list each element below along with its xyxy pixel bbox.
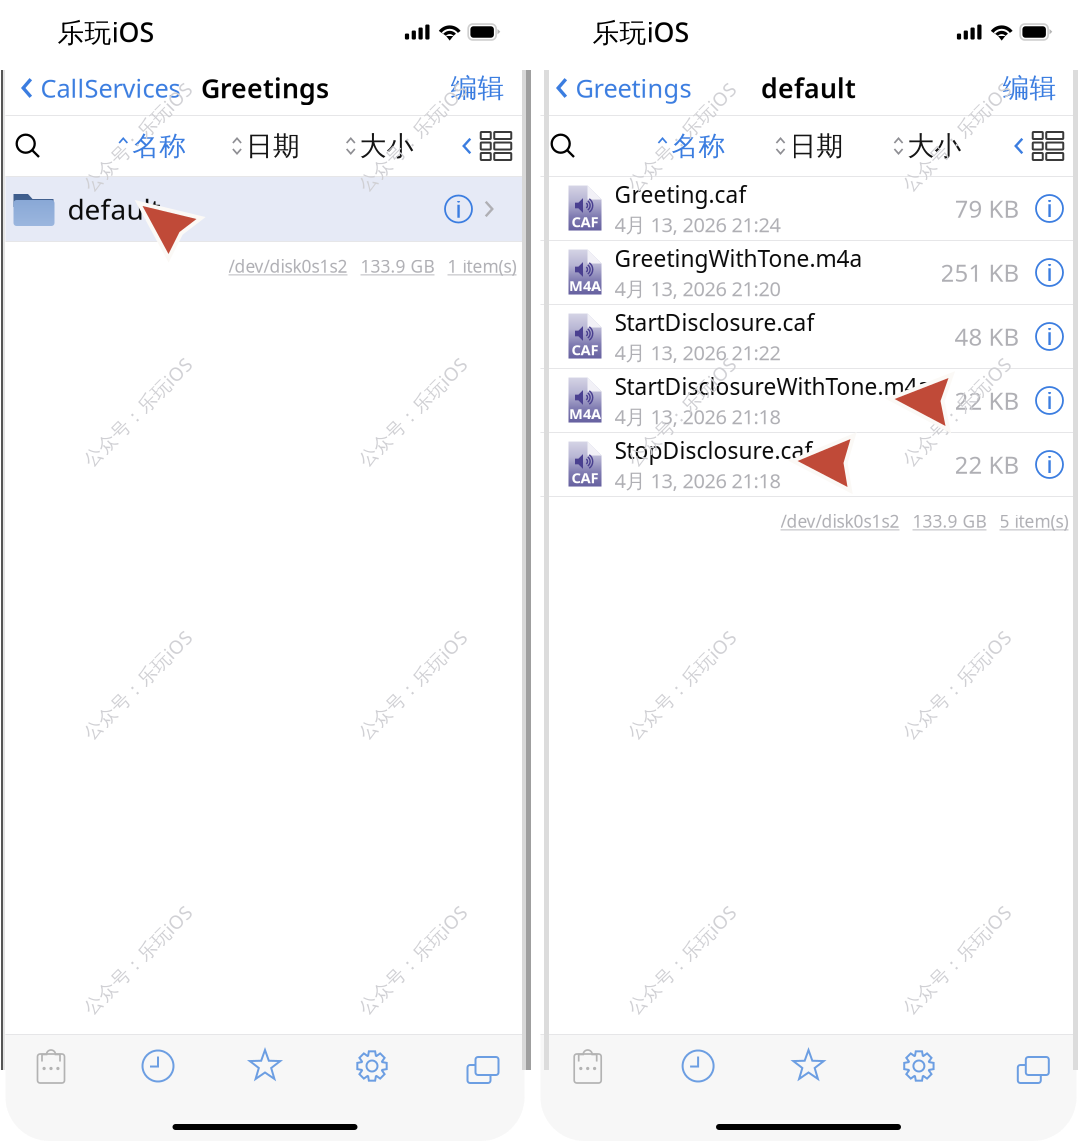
staticText: 公众号：乐玩iOS	[884, 948, 1028, 972]
staticText: 名称	[132, 130, 186, 162]
staticText: /dev/disk0s1s2	[780, 509, 899, 532]
staticText: 4月 13, 2026 21:18	[614, 467, 780, 494]
button[interactable]: Favorites	[211, 1049, 318, 1082]
staticText: i	[1046, 321, 1052, 351]
staticText: M4A	[569, 404, 601, 423]
staticText: 公众号：乐玩iOS	[609, 400, 753, 424]
button[interactable]: Search	[540, 123, 575, 168]
staticText: 22 KB	[954, 449, 1019, 480]
button[interactable]: M4A	[540, 369, 1076, 433]
button[interactable]: 名称	[118, 130, 186, 162]
staticText: Greetings	[201, 70, 329, 106]
button[interactable]: M4A	[540, 241, 1076, 305]
button[interactable]: default	[5, 177, 524, 241]
staticText: 日期	[246, 130, 300, 162]
staticText: CallServices	[40, 71, 180, 105]
staticText: 编辑	[1002, 72, 1056, 104]
staticText: default	[67, 190, 160, 228]
staticText: 编辑	[450, 72, 504, 104]
staticText: 251 KB	[940, 257, 1019, 288]
button[interactable]: 大小	[346, 130, 414, 162]
staticText: CAF	[571, 340, 598, 359]
staticText: 日期	[789, 130, 843, 162]
staticText: 公众号：乐玩iOS	[340, 125, 484, 149]
staticText: 22 KB	[954, 385, 1019, 416]
staticText: 公众号：乐玩iOS	[65, 400, 209, 424]
staticText: Greetings	[575, 71, 691, 105]
staticText: GreetingWithTone.m4a	[614, 243, 862, 273]
button[interactable]: 日期	[232, 130, 300, 162]
staticText: 133.9 GB	[360, 254, 434, 277]
button[interactable]: Recents	[643, 1049, 753, 1082]
staticText: 公众号：乐玩iOS	[609, 948, 753, 972]
staticText: 4月 13, 2026 21:24	[614, 211, 780, 238]
button[interactable]: Settings	[318, 1049, 425, 1082]
button[interactable]: 编辑	[1002, 64, 1076, 112]
button[interactable]: Search	[5, 123, 40, 168]
staticText: 4月 13, 2026 21:22	[614, 339, 780, 366]
staticText: 乐玩iOS	[592, 14, 689, 50]
staticText: default	[761, 70, 856, 106]
staticText: 公众号：乐玩iOS	[65, 125, 209, 149]
button[interactable]: CallServices	[5, 63, 180, 113]
staticText: 4月 13, 2026 21:20	[614, 275, 780, 302]
staticText: 大小	[360, 130, 414, 162]
staticText: 公众号：乐玩iOS	[884, 673, 1028, 697]
button[interactable]: Clipboard	[0, 1047, 104, 1085]
button[interactable]: CAF	[540, 177, 1076, 241]
staticText: 48 KB	[954, 321, 1019, 352]
staticText: 公众号：乐玩iOS	[884, 400, 1028, 424]
staticText: M4A	[569, 276, 601, 295]
staticText: i	[1046, 257, 1052, 287]
button[interactable]: View options	[462, 132, 524, 160]
button[interactable]: 大小	[893, 130, 961, 162]
staticText: 1 item(s)	[447, 254, 516, 277]
staticText: 公众号：乐玩iOS	[340, 948, 484, 972]
staticText: 公众号：乐玩iOS	[65, 948, 209, 972]
staticText: 大小	[907, 130, 961, 162]
button[interactable]: View options	[1014, 132, 1076, 160]
button[interactable]: Windows	[425, 1052, 532, 1079]
staticText: 名称	[671, 130, 725, 162]
staticText: StartDisclosure.caf	[614, 307, 814, 337]
staticText: 公众号：乐玩iOS	[609, 125, 753, 149]
staticText: CAF	[571, 468, 598, 487]
staticText: CAF	[571, 212, 598, 231]
staticText: StartDisclosureWithTone.m4a	[614, 371, 930, 401]
staticText: 公众号：乐玩iOS	[609, 673, 753, 697]
staticText: i	[1046, 449, 1052, 479]
staticText: StopDisclosure.caf	[614, 435, 812, 465]
button[interactable]: Settings	[864, 1049, 974, 1082]
staticText: 4月 13, 2026 21:18	[614, 403, 780, 430]
button[interactable]: 日期	[775, 130, 843, 162]
staticText: 公众号：乐玩iOS	[340, 673, 484, 697]
staticText: 公众号：乐玩iOS	[340, 400, 484, 424]
staticText: 79 KB	[954, 193, 1019, 224]
button[interactable]: Greetings	[540, 63, 691, 113]
button[interactable]: 编辑	[450, 64, 524, 112]
button[interactable]: Windows	[974, 1052, 1080, 1079]
staticText: 133.9 GB	[912, 509, 986, 532]
button[interactable]: 名称	[657, 130, 725, 162]
button[interactable]: Clipboard	[532, 1047, 643, 1085]
staticText: 5 item(s)	[999, 509, 1068, 532]
button[interactable]: Recents	[104, 1049, 211, 1082]
button[interactable]: Favorites	[753, 1049, 864, 1082]
button[interactable]: CAF	[540, 305, 1076, 369]
staticText: i	[455, 194, 461, 224]
staticText: i	[1046, 193, 1052, 223]
staticText: Greeting.caf	[614, 179, 746, 209]
staticText: 公众号：乐玩iOS	[884, 125, 1028, 149]
button[interactable]: CAF	[540, 433, 1076, 497]
staticText: 乐玩iOS	[57, 14, 154, 50]
staticText: /dev/disk0s1s2	[228, 254, 347, 277]
staticText: i	[1046, 385, 1052, 415]
staticText: 公众号：乐玩iOS	[65, 673, 209, 697]
